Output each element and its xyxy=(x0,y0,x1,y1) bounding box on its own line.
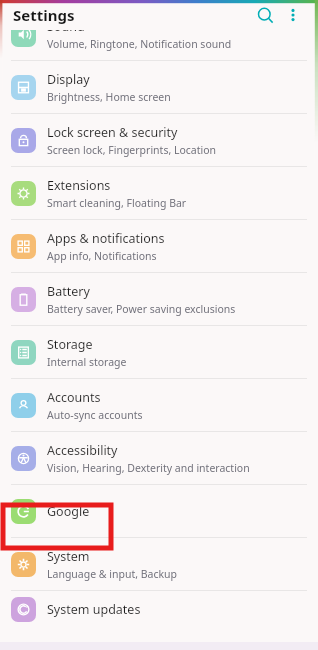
button[interactable]: Lock screen & security xyxy=(0,114,318,166)
staticText: Sound xyxy=(47,30,85,35)
staticText: Vision, Hearing, Dexterity and interacti… xyxy=(47,461,250,475)
button[interactable]: Extensions xyxy=(0,167,318,219)
staticText: Auto-sync accounts xyxy=(47,408,143,422)
button[interactable]: More options xyxy=(278,0,308,30)
staticText: Battery xyxy=(47,283,90,300)
button[interactable]: Sound xyxy=(0,30,318,60)
staticText: System xyxy=(47,548,90,565)
staticText: Storage xyxy=(47,336,93,353)
staticText: App info, Notifications xyxy=(47,249,157,263)
button[interactable]: Apps & notifications xyxy=(0,220,318,272)
staticText: System updates xyxy=(47,601,141,618)
button[interactable]: Storage xyxy=(0,326,318,378)
button[interactable]: Search xyxy=(250,0,280,30)
staticText: Accounts xyxy=(47,389,101,406)
button[interactable]: Accessibility xyxy=(0,432,318,484)
staticText: Accessibility xyxy=(47,442,118,459)
staticText: Apps & notifications xyxy=(47,230,165,247)
button[interactable]: Google xyxy=(0,485,318,537)
button[interactable]: Battery xyxy=(0,273,318,325)
staticText: Brightness, Home screen xyxy=(47,90,171,104)
staticText: Extensions xyxy=(47,177,111,194)
staticText: Internal storage xyxy=(47,355,127,369)
staticText: Google xyxy=(47,503,90,520)
staticText: Display xyxy=(47,71,90,88)
button[interactable]: System updates xyxy=(0,591,318,628)
staticText: Smart cleaning, Floating Bar xyxy=(47,196,187,210)
staticText: Volume, Ringtone, Notification sound xyxy=(47,37,232,51)
staticText: Settings xyxy=(13,5,75,25)
staticText: Lock screen & security xyxy=(47,124,178,141)
button[interactable]: System xyxy=(0,538,318,590)
staticText: Language & input, Backup xyxy=(47,567,178,581)
staticText: Battery saver, Power saving exclusions xyxy=(47,302,236,316)
button[interactable]: Display xyxy=(0,61,318,113)
button[interactable]: Accounts xyxy=(0,379,318,431)
staticText: Screen lock, Fingerprints, Location xyxy=(47,143,217,157)
